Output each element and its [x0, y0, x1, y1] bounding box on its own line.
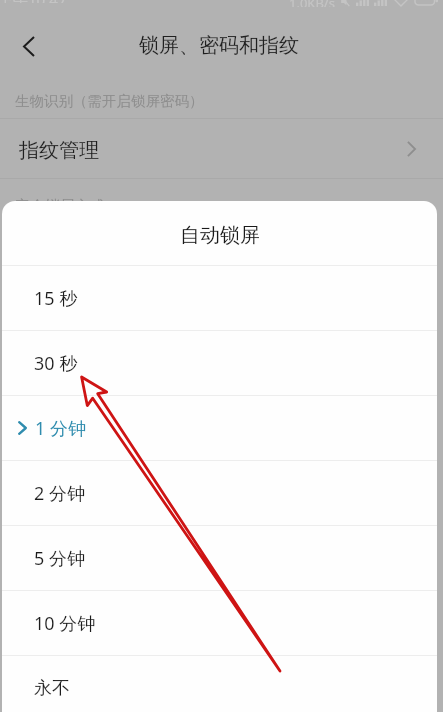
- button[interactable]: 指纹管理: [0, 119, 443, 178]
- button[interactable]: 2 分钟: [2, 461, 437, 525]
- staticText: 锁屏、密码和指纹: [139, 33, 299, 58]
- staticText: 指纹管理: [19, 138, 407, 163]
- button[interactable]: 10 分钟: [2, 591, 437, 655]
- staticText: 自动锁屏: [180, 223, 260, 248]
- staticText: 永不: [34, 677, 70, 700]
- staticText: 生物识别（需开启锁屏密码）: [15, 92, 204, 110]
- staticText: 安全锁屏方式: [15, 197, 105, 216]
- staticText: 1 分钟: [35, 416, 86, 441]
- staticText: 5 分钟: [34, 546, 85, 571]
- button[interactable]: 永不: [2, 656, 437, 712]
- staticText: 1.0KB/s: [289, 0, 335, 7]
- staticText: 10 分钟: [34, 611, 96, 636]
- button[interactable]: 15 秒: [2, 266, 437, 330]
- button[interactable]: 1 分钟: [2, 396, 437, 460]
- button[interactable]: Back: [3, 22, 51, 70]
- button[interactable]: 5 分钟: [2, 526, 437, 590]
- staticText: 15 秒: [34, 286, 78, 311]
- staticText: 30 秒: [34, 351, 78, 376]
- staticText: 上午10:47: [0, 0, 67, 3]
- button[interactable]: 30 秒: [2, 331, 437, 395]
- staticText: 2 分钟: [34, 481, 85, 506]
